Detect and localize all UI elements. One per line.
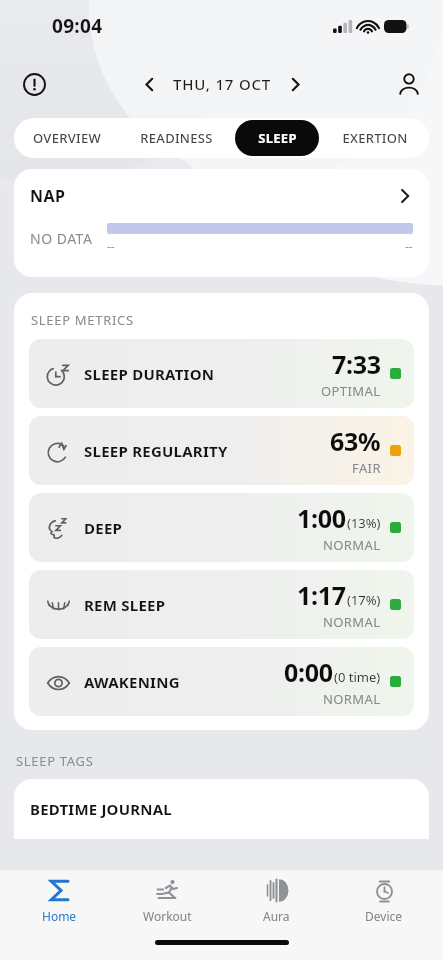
staticText: AWAKENING	[84, 672, 180, 692]
button[interactable]: BEDTIME JOURNAL	[14, 779, 429, 839]
staticText: SLEEP METRICS	[31, 311, 134, 329]
button[interactable]: Device	[334, 870, 434, 932]
staticText: NO DATA	[30, 229, 93, 248]
button[interactable]: Profile	[389, 64, 429, 104]
staticText: 09:04	[52, 13, 103, 39]
button[interactable]: SLEEP REGULARITY	[29, 416, 414, 485]
staticText: Device	[365, 908, 403, 924]
button[interactable]: EXERTION	[323, 120, 427, 156]
staticText: BEDTIME JOURNAL	[30, 799, 172, 819]
button[interactable]: SLEEP DURATION	[29, 339, 414, 408]
button[interactable]: Workout	[117, 870, 217, 932]
staticText: 1:17	[297, 578, 346, 612]
staticText: SLEEP DURATION	[84, 364, 215, 384]
staticText: FAIR	[352, 459, 381, 477]
button[interactable]: REM SLEEP	[29, 570, 414, 639]
staticText: 1:00	[297, 501, 346, 535]
button[interactable]: NAP	[14, 169, 429, 277]
staticText: NAP	[30, 185, 66, 207]
button[interactable]: Home	[9, 870, 109, 932]
button[interactable]: Next day	[277, 66, 313, 102]
staticText: OPTIMAL	[321, 382, 381, 400]
staticText: Workout	[143, 908, 192, 924]
staticText: REM SLEEP	[84, 595, 166, 615]
staticText: THU, 17 OCT	[173, 74, 271, 94]
staticText: EXERTION	[342, 129, 408, 147]
button[interactable]: SLEEP	[235, 120, 319, 156]
button[interactable]: Alerts	[14, 64, 54, 104]
button[interactable]: AWAKENING	[29, 647, 414, 716]
staticText: 0:00	[284, 655, 333, 689]
staticText: Home	[42, 908, 77, 924]
staticText: NORMAL	[323, 536, 381, 554]
staticText: (0 time)	[334, 668, 381, 686]
staticText: NORMAL	[323, 690, 381, 708]
staticText: SLEEP	[258, 129, 297, 147]
staticText: READINESS	[140, 129, 213, 147]
staticText: SLEEP TAGS	[16, 752, 94, 770]
button[interactable]: DEEP	[29, 493, 414, 562]
staticText: SLEEP REGULARITY	[84, 441, 228, 461]
button[interactable]: Previous day	[131, 66, 167, 102]
staticText: Aura	[263, 908, 290, 924]
staticText: (13%)	[347, 514, 381, 532]
button[interactable]: READINESS	[122, 120, 231, 156]
staticText: NORMAL	[323, 613, 381, 631]
button[interactable]: Aura	[226, 870, 326, 932]
staticText: OVERVIEW	[33, 129, 101, 147]
staticText: 63%	[330, 424, 381, 458]
staticText: DEEP	[84, 518, 123, 538]
staticText: --	[405, 238, 413, 254]
staticText: --	[107, 238, 115, 254]
button[interactable]: OVERVIEW	[16, 120, 118, 156]
staticText: 7:33	[332, 347, 381, 381]
staticText: (17%)	[347, 591, 381, 609]
